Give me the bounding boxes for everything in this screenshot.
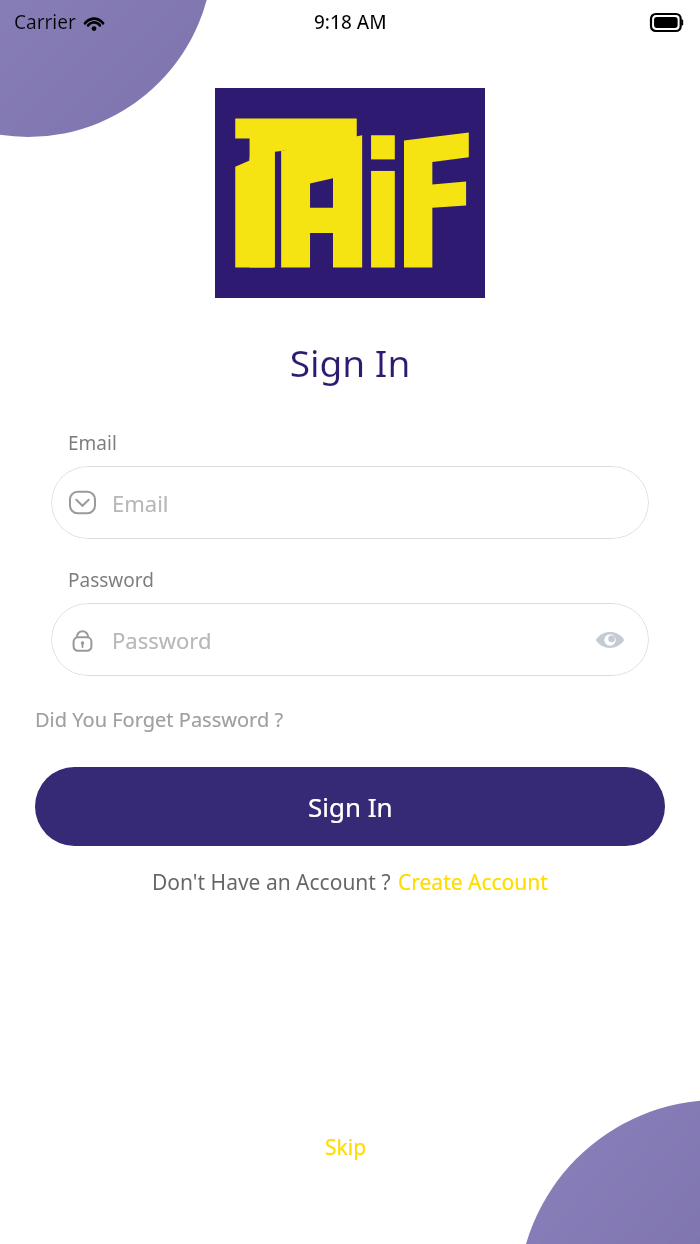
staticText: Password <box>68 567 154 593</box>
button[interactable]: Show password <box>593 623 627 657</box>
staticText: Sign In <box>0 337 700 387</box>
staticText: Email <box>68 430 117 456</box>
button[interactable]: Sign In <box>35 767 665 846</box>
staticText: Password <box>112 625 593 655</box>
button[interactable]: Email <box>51 466 649 539</box>
staticText: Carrier <box>14 9 76 35</box>
staticText: Sign In <box>308 789 393 824</box>
staticText: Did You Forget Password ? <box>35 706 284 733</box>
button[interactable]: Skip <box>315 1127 377 1168</box>
staticText: Create Account <box>398 868 548 897</box>
button[interactable]: Password <box>51 603 649 676</box>
staticText: Don't Have an Account ? <box>152 868 391 897</box>
button[interactable]: Create Account <box>398 868 548 897</box>
staticText: Skip <box>325 1133 367 1162</box>
button[interactable]: Did You Forget Password ? <box>35 702 284 737</box>
staticText: 9:18 AM <box>314 9 387 35</box>
staticText: Email <box>112 488 627 518</box>
